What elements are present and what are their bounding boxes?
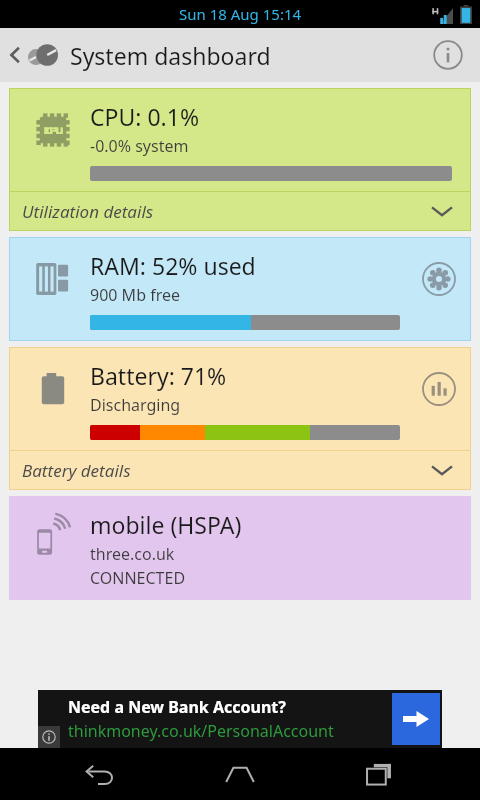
button[interactable]: RAM: 52% used (10, 238, 470, 340)
staticText: Discharging (90, 394, 181, 416)
button[interactable]: Utilization details (10, 192, 470, 230)
staticText: System dashboard (70, 40, 271, 71)
staticText: CPU: 0.1% (90, 101, 199, 132)
button[interactable]: Open ad (392, 693, 440, 745)
staticText: thinkmoney.co.uk/PersonalAccount (68, 720, 334, 742)
staticText: Battery: 71% (90, 360, 227, 391)
button[interactable]: Back (0, 28, 480, 82)
staticText: three.co.uk (90, 543, 175, 565)
button[interactable]: CPU: 0.1% (10, 89, 470, 191)
button[interactable]: Back (63, 748, 139, 800)
button[interactable]: mobile (HSPA) (10, 497, 470, 599)
button[interactable]: Battery details (10, 451, 470, 489)
button[interactable]: Ad info (38, 726, 60, 748)
staticText: Utilization details (22, 200, 154, 223)
button[interactable]: Need a New Bank Account? (38, 690, 442, 748)
other: RAM settings (422, 262, 456, 296)
button[interactable]: Battery history (408, 358, 470, 420)
button[interactable]: Battery: 71% (10, 348, 470, 450)
button[interactable]: Recent apps (341, 748, 417, 800)
staticText: Sun 18 Aug 15:14 (179, 4, 302, 24)
staticText: RAM: 52% used (90, 250, 256, 281)
button[interactable]: RAM settings (408, 248, 470, 310)
staticText: Need a New Bank Account? (68, 696, 286, 718)
button[interactable]: Home (202, 748, 278, 800)
staticText: CONNECTED (90, 567, 186, 589)
staticText: 900 Mb free (90, 284, 180, 306)
staticText: -0.0% system (90, 135, 189, 157)
button[interactable]: About (426, 33, 470, 77)
staticText: Battery details (22, 459, 131, 482)
staticText: mobile (HSPA) (90, 509, 242, 540)
other: Battery history (422, 372, 456, 406)
other: Back (8, 42, 22, 68)
